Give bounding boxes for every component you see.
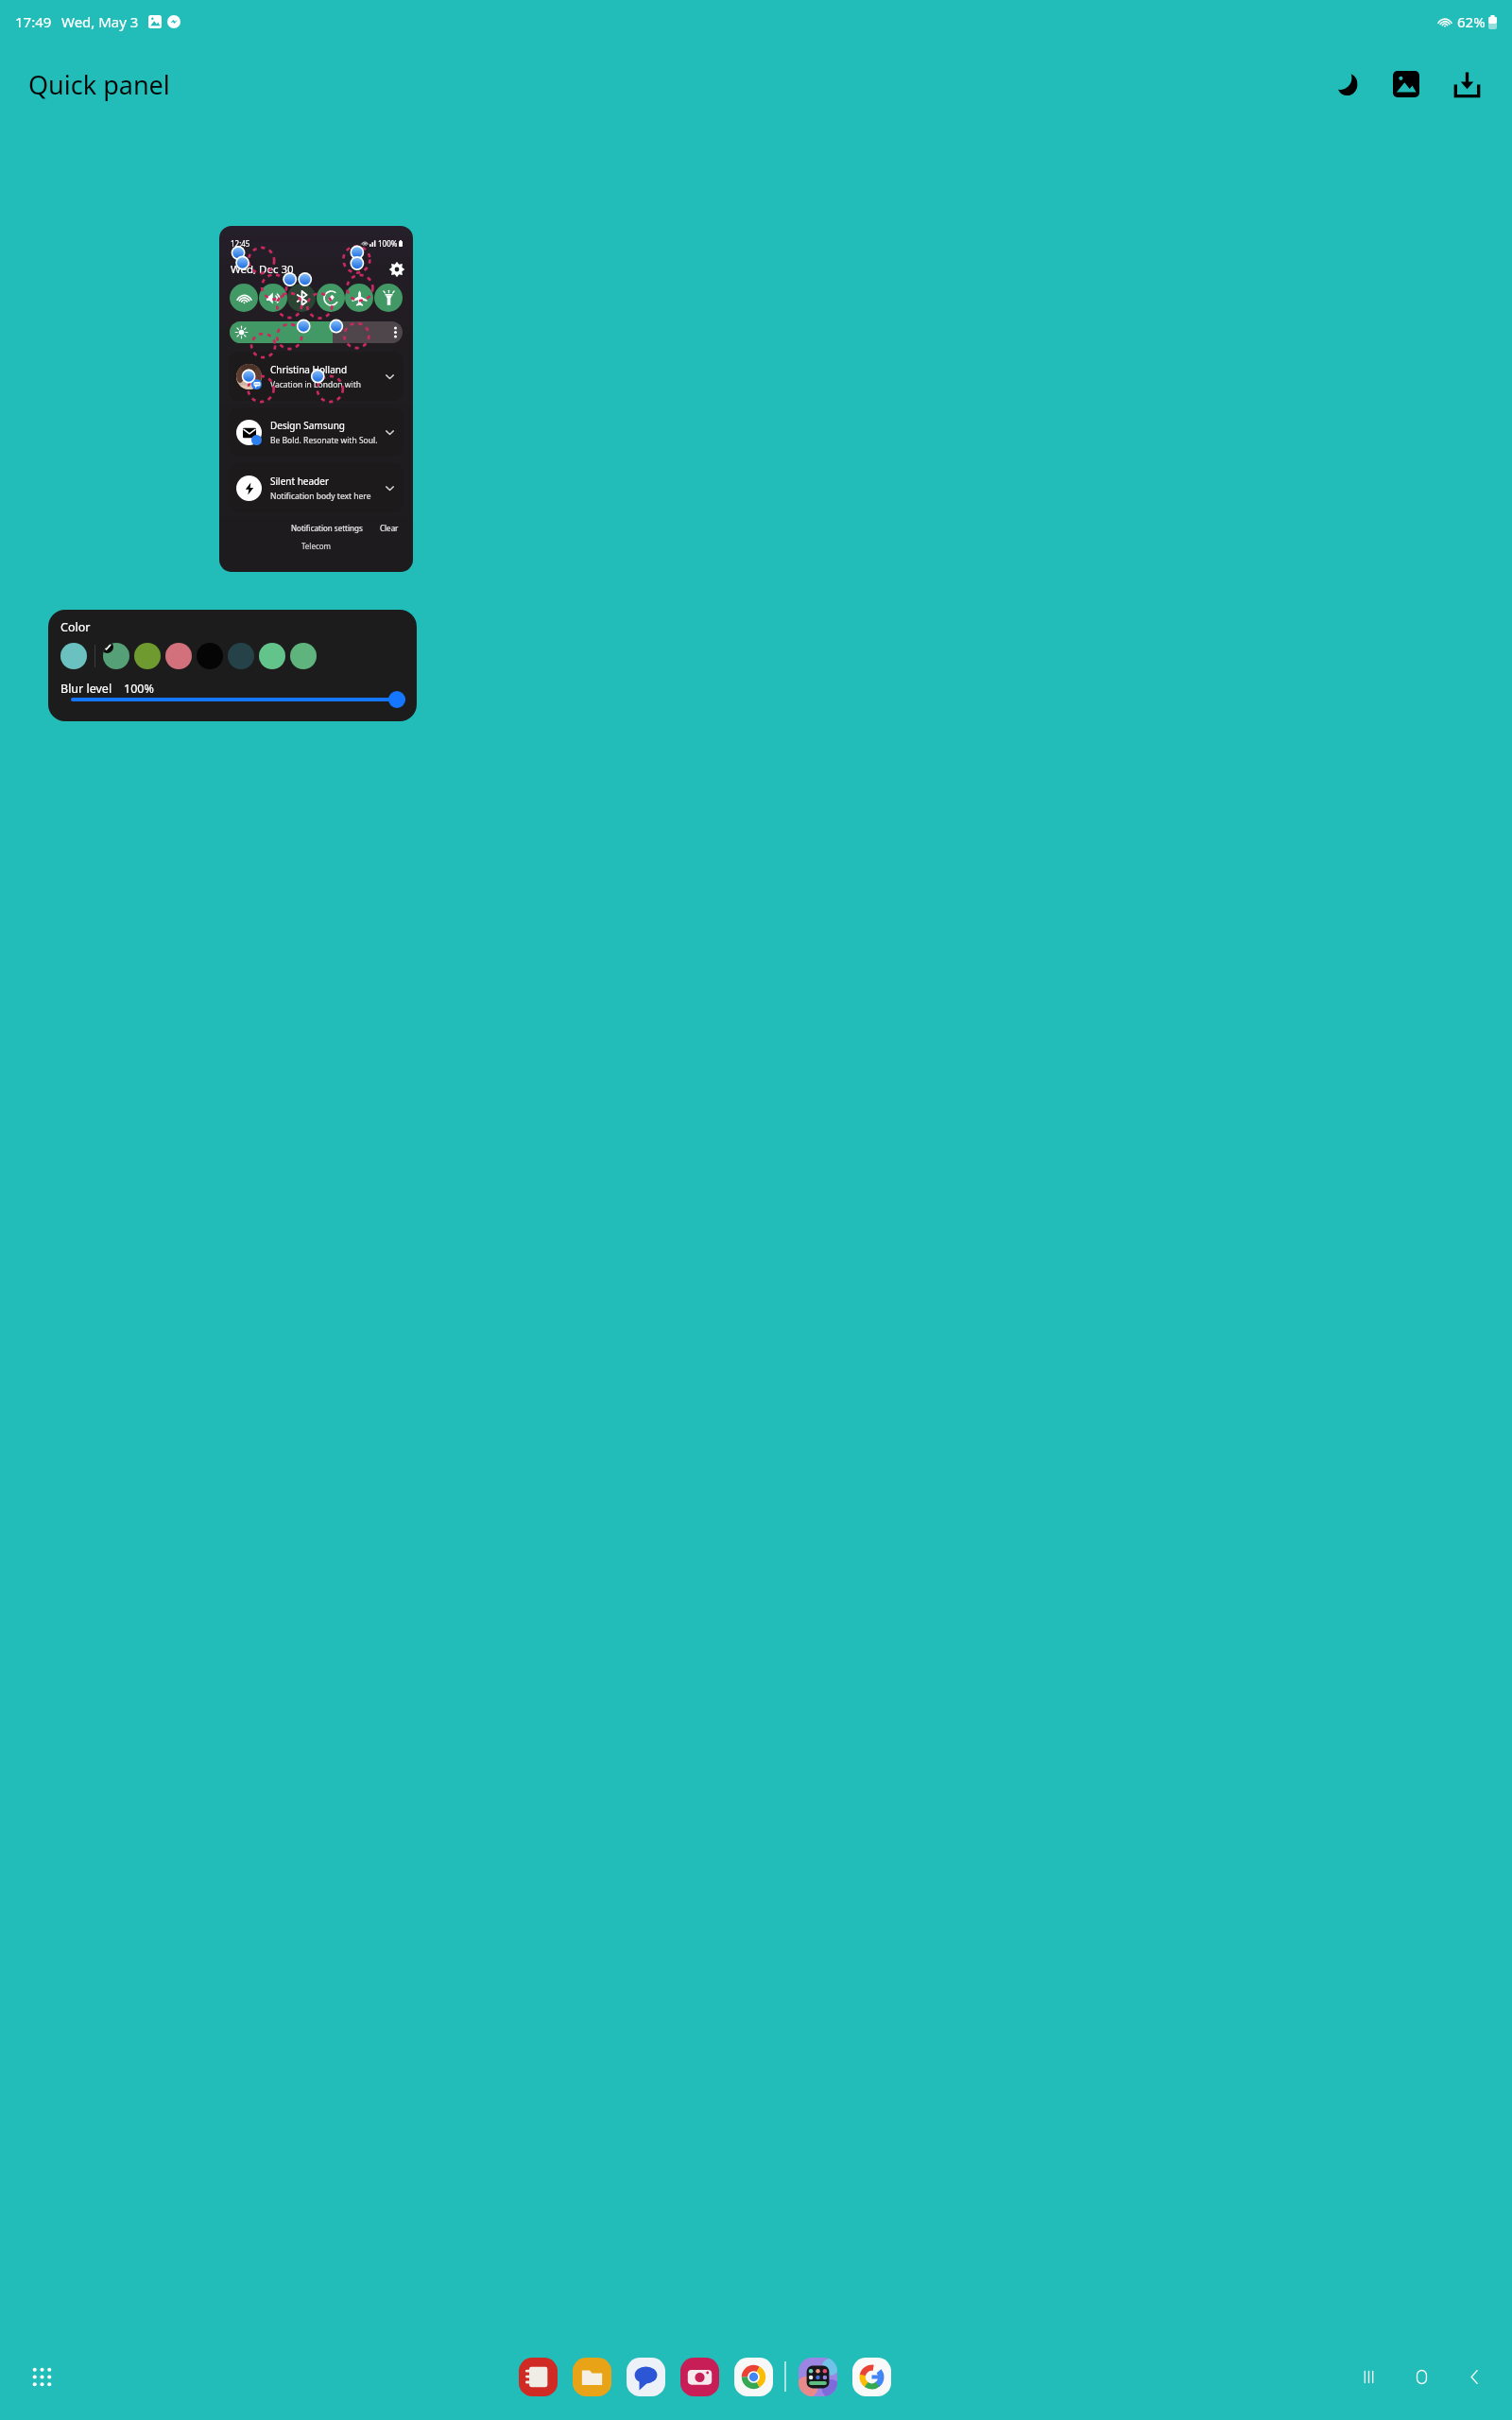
- button[interactable]: Expand: [381, 423, 398, 441]
- staticText: Telecom: [219, 541, 413, 551]
- button[interactable]: Wi-Fi: [230, 284, 258, 312]
- button[interactable]: Current colour: [60, 643, 87, 669]
- button[interactable]: Dark mode: [1323, 61, 1368, 107]
- staticText: 100%: [378, 238, 398, 249]
- button[interactable]: Colour option 3: [165, 643, 192, 669]
- button[interactable]: Google: [850, 2355, 893, 2398]
- staticText: Vacation in London with family: [270, 379, 381, 390]
- staticText: 17:49: [15, 12, 52, 31]
- button[interactable]: Auto rotate: [317, 284, 345, 312]
- staticText: Christina Holland: [270, 363, 348, 376]
- staticText: Color: [60, 619, 91, 635]
- button[interactable]: Messages: [624, 2355, 667, 2398]
- staticText: 62%: [1457, 12, 1486, 31]
- button[interactable]: Christina Holland: [229, 352, 404, 401]
- staticText: Be Bold. Resonate with Soul. Reinterp...: [270, 435, 381, 446]
- staticText: 12:45: [231, 238, 250, 249]
- button[interactable]: Chrome: [731, 2355, 775, 2398]
- button[interactable]: Apps: [21, 2356, 62, 2397]
- button[interactable]: Recents: [1348, 2356, 1389, 2397]
- button[interactable]: Expand: [381, 479, 398, 496]
- button[interactable]: Expand: [381, 368, 398, 385]
- button[interactable]: Colour option 6: [259, 643, 285, 669]
- button[interactable]: My Files: [570, 2355, 613, 2398]
- button[interactable]: Design Samsung: [229, 407, 404, 457]
- button[interactable]: Blur level slider: [71, 690, 405, 709]
- button[interactable]: Colour option 4: [197, 643, 223, 669]
- staticText: Clear: [380, 523, 399, 533]
- staticText: Wed, Dec 30: [231, 262, 294, 277]
- button[interactable]: Samsung Notes: [516, 2355, 559, 2398]
- staticText: Notification settings: [291, 523, 363, 533]
- button[interactable]: Colour option 7: [290, 643, 317, 669]
- button[interactable]: Colour option 5: [228, 643, 254, 669]
- staticText: Wed, May 3: [61, 12, 139, 31]
- staticText: Blur level: [60, 681, 112, 697]
- button[interactable]: Download: [1444, 61, 1489, 107]
- button[interactable]: Colour option 1: [103, 643, 129, 669]
- button[interactable]: Notification settings: [289, 521, 365, 535]
- button[interactable]: Colour option 2: [134, 643, 161, 669]
- button[interactable]: Sound: [259, 284, 287, 312]
- button[interactable]: Bluetooth: [287, 284, 316, 312]
- button[interactable]: Brightness: [230, 321, 403, 343]
- button[interactable]: Camera: [678, 2355, 721, 2398]
- button[interactable]: Settings: [387, 260, 406, 279]
- staticText: Design Samsung: [270, 419, 345, 432]
- staticText: Quick panel: [28, 67, 170, 102]
- button[interactable]: Good Lock: [796, 2355, 839, 2398]
- button[interactable]: 12:45: [219, 226, 413, 572]
- staticText: Notification body text here: [270, 491, 371, 502]
- staticText: Silent header: [270, 475, 330, 488]
- button[interactable]: Silent header: [229, 463, 404, 512]
- button[interactable]: Clear: [378, 521, 401, 535]
- button[interactable]: Flashlight: [374, 284, 403, 312]
- staticText: 100%: [124, 681, 154, 697]
- button[interactable]: Back: [1453, 2356, 1495, 2397]
- button[interactable]: Home: [1400, 2356, 1442, 2397]
- button[interactable]: Flight mode: [345, 284, 373, 312]
- button[interactable]: Wallpaper: [1383, 61, 1429, 107]
